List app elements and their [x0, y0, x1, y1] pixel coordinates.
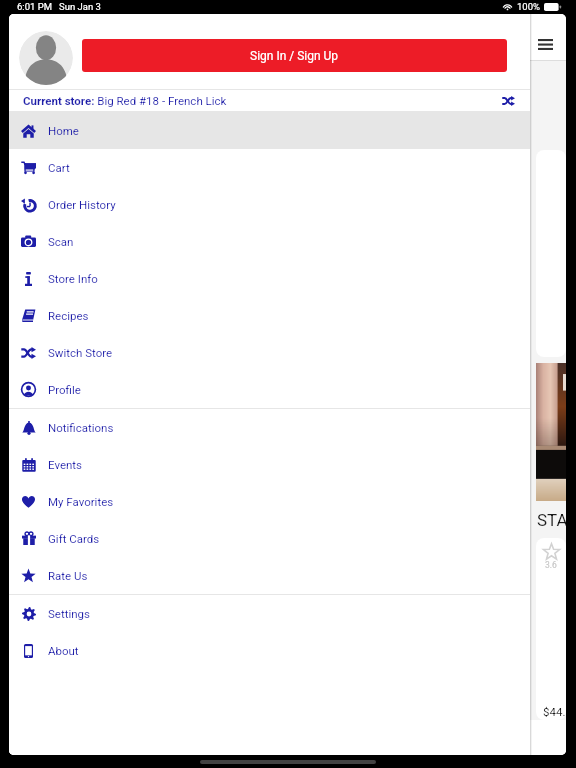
- staticText: About: [48, 644, 79, 657]
- button[interactable]: Rate Us: [9, 557, 530, 594]
- button[interactable]: Gift Cards: [9, 520, 530, 557]
- staticText: Events: [48, 458, 83, 471]
- button[interactable]: My Favorites: [9, 483, 530, 520]
- staticText: Rate Us: [48, 569, 88, 582]
- staticText: Cart: [48, 161, 70, 174]
- staticText: Profile: [48, 383, 81, 396]
- staticText: 100%: [517, 1, 540, 12]
- button[interactable]: Open navigation menu: [530, 30, 558, 58]
- staticText: Gift Cards: [48, 532, 100, 545]
- staticText: 6:01 PM: [17, 1, 52, 12]
- button[interactable]: Events: [9, 446, 530, 483]
- button[interactable]: Settings: [9, 595, 530, 632]
- staticText: Settings: [48, 607, 90, 620]
- staticText: Store Info: [48, 272, 98, 285]
- staticText: Current store: Big Red #18 - French Lick: [23, 94, 227, 107]
- button[interactable]: Sign In / Sign Up: [82, 39, 507, 72]
- staticText: Home: [48, 124, 79, 137]
- button[interactable]: Recipes: [9, 297, 530, 334]
- button[interactable]: Cart: [9, 149, 530, 186]
- button[interactable]: Order History: [9, 186, 530, 223]
- button[interactable]: Current store: Big Red #18 - French Lick: [9, 90, 530, 111]
- staticText: Recipes: [48, 309, 89, 322]
- staticText: Sign In / Sign Up: [250, 49, 339, 63]
- button[interactable]: Scan: [9, 223, 530, 260]
- staticText: 3.6: [545, 560, 557, 570]
- staticText: Scan: [48, 235, 74, 248]
- staticText: Notifications: [48, 421, 114, 434]
- button[interactable]: Switch store: [498, 91, 518, 111]
- button[interactable]: Profile: [9, 371, 530, 408]
- staticText: My Favorites: [48, 495, 114, 508]
- button[interactable]: Store Info: [9, 260, 530, 297]
- button[interactable]: Notifications: [9, 409, 530, 446]
- staticText: Sun Jan 3: [59, 1, 101, 12]
- staticText: Order History: [48, 198, 116, 211]
- button[interactable]: Home: [9, 112, 530, 149]
- staticText: $44.99: [543, 705, 566, 720]
- staticText: START SHOPPING: [537, 510, 566, 530]
- button[interactable]: Switch Store: [9, 334, 530, 371]
- staticText: Switch Store: [48, 346, 113, 359]
- button[interactable]: About: [9, 632, 530, 669]
